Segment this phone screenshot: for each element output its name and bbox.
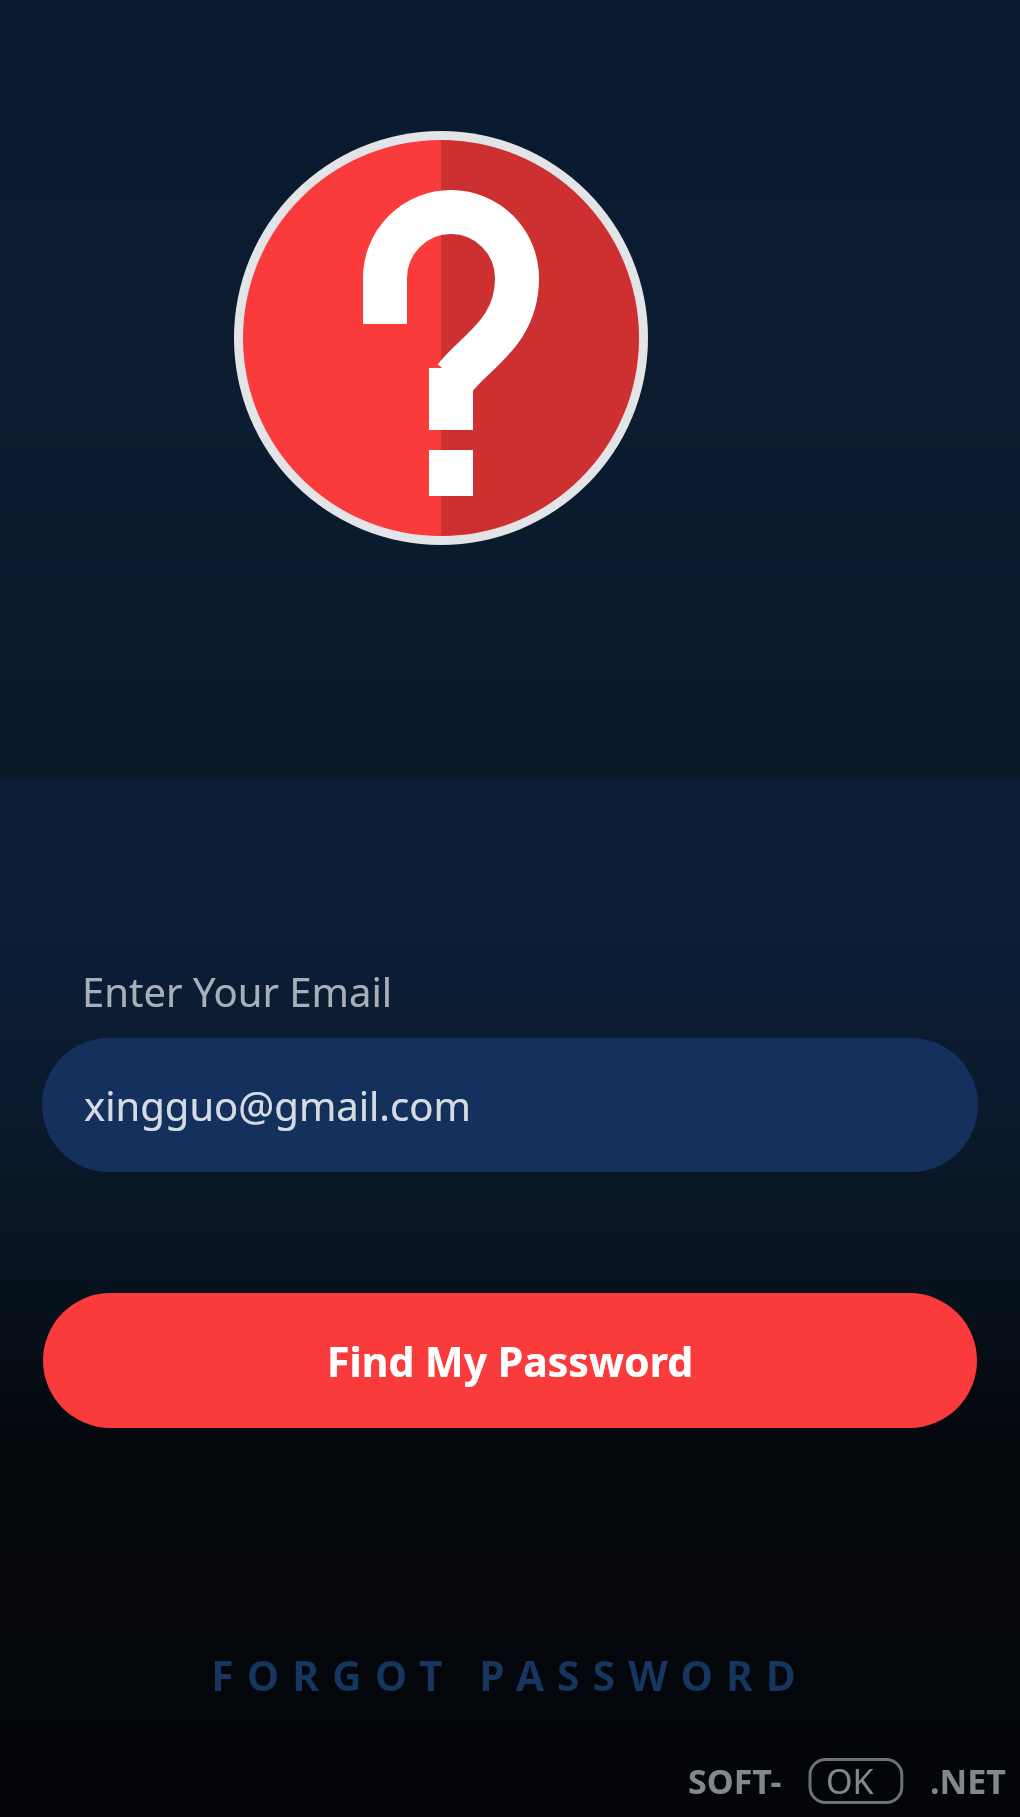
button[interactable]: FORGOT PASSWORD (0, 1642, 1020, 1708)
staticText: OK (826, 1758, 874, 1804)
staticText: SOFT- (688, 1758, 782, 1804)
staticText: FORGOT PASSWORD (211, 1647, 809, 1703)
staticText: .NET (930, 1758, 1006, 1804)
staticText: xingguo@gmail.com (84, 1078, 471, 1132)
other: soft-ok.net watermark (674, 1751, 1014, 1811)
staticText: Enter Your Email (82, 964, 393, 1018)
staticText: Find My Password (327, 1333, 694, 1389)
button[interactable]: Find My Password (43, 1293, 977, 1428)
button[interactable]: xingguo@gmail.com (42, 1038, 978, 1172)
